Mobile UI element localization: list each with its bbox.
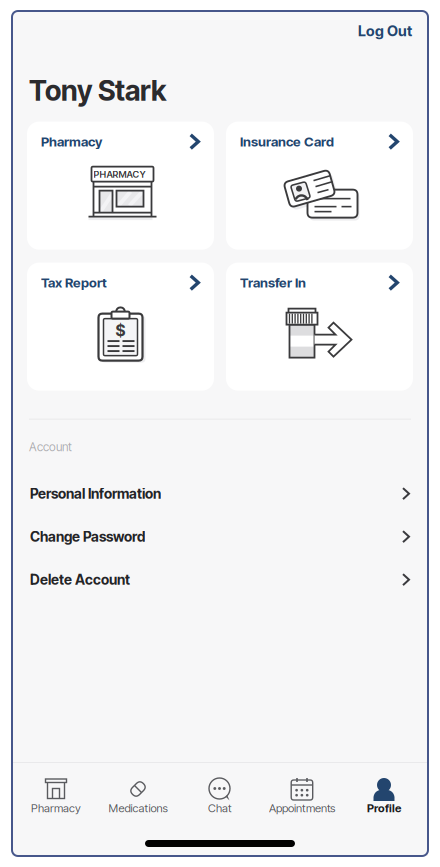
staticText: Account (29, 440, 72, 454)
button[interactable]: Insurance Card (226, 122, 413, 250)
staticText: Medications (108, 801, 167, 815)
staticText: $ (115, 321, 125, 340)
staticText: Personal Information (30, 485, 161, 502)
staticText: Delete Account (30, 571, 130, 588)
staticText: Pharmacy (41, 134, 102, 150)
staticText: Profile (367, 801, 401, 815)
button[interactable]: Log Out (342, 16, 428, 46)
button[interactable]: Medications (97, 763, 179, 824)
staticText: Insurance Card (240, 134, 334, 150)
staticText: Log Out (358, 22, 412, 40)
button[interactable]: Delete Account (13, 558, 427, 601)
button[interactable]: Chat (179, 763, 261, 824)
button[interactable]: Profile (343, 763, 425, 824)
staticText: Chat (208, 801, 232, 815)
staticText: Tony Stark (29, 74, 166, 108)
staticText: Pharmacy (31, 801, 81, 815)
button[interactable]: Transfer In (226, 263, 413, 391)
staticText: Appointments (269, 801, 335, 815)
button[interactable]: Pharmacy (27, 122, 214, 250)
staticText: PHARMACY (93, 169, 145, 180)
button[interactable]: Tax Report (27, 263, 214, 391)
button[interactable]: Change Password (13, 515, 427, 558)
staticText: Transfer In (240, 275, 306, 291)
staticText: Change Password (30, 528, 145, 545)
staticText: Tax Report (41, 275, 107, 291)
button[interactable]: Personal Information (13, 472, 427, 515)
button[interactable]: Appointments (261, 763, 343, 824)
button[interactable]: Pharmacy (15, 763, 97, 824)
